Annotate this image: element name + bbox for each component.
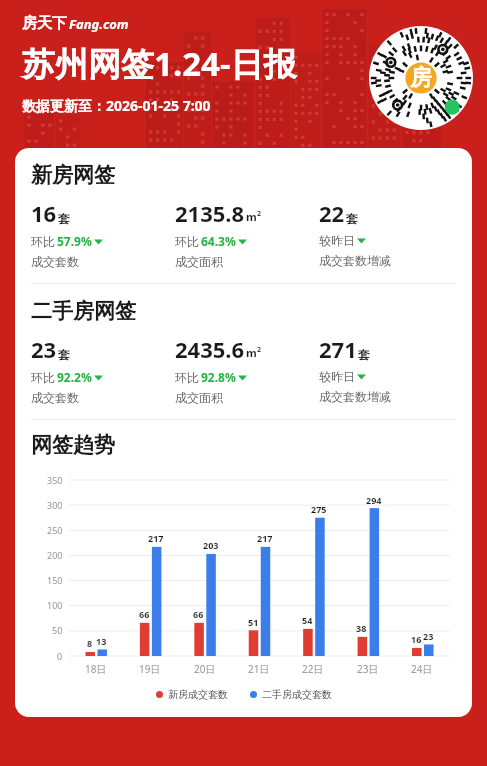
staticText: 苏州网签1.24-日报 bbox=[22, 41, 297, 86]
staticText: 24日 bbox=[411, 662, 433, 676]
staticText: 200 bbox=[47, 549, 63, 561]
staticText: 套 bbox=[358, 347, 370, 362]
staticText: 环比 bbox=[31, 370, 55, 385]
staticText: 23 bbox=[423, 630, 434, 642]
staticText: 21日 bbox=[248, 662, 270, 676]
staticText: 217 bbox=[257, 532, 273, 544]
button[interactable]: 二手房成交套数 bbox=[250, 688, 332, 701]
staticText: 环比 bbox=[31, 234, 55, 249]
staticText: 套 bbox=[58, 347, 70, 362]
button[interactable]: 23 bbox=[31, 334, 175, 405]
staticText: 92.2% bbox=[57, 369, 92, 385]
staticText: 275 bbox=[311, 503, 327, 515]
staticText: m bbox=[246, 209, 257, 224]
staticText: m bbox=[246, 345, 257, 360]
staticText: 2435.6 bbox=[175, 334, 245, 364]
staticText: 100 bbox=[47, 599, 63, 611]
staticText: 16 bbox=[31, 198, 57, 228]
staticText: 20日 bbox=[194, 662, 216, 676]
button[interactable]: 二手房网签 bbox=[31, 298, 136, 324]
staticText: 环比 bbox=[175, 370, 199, 385]
staticText: 套 bbox=[346, 211, 358, 226]
staticText: 2 bbox=[257, 345, 262, 355]
staticText: 19日 bbox=[139, 662, 161, 676]
staticText: 成交套数 bbox=[31, 390, 79, 405]
staticText: 0 bbox=[57, 650, 63, 662]
staticText: 350 bbox=[47, 474, 63, 486]
staticText: 250 bbox=[47, 524, 63, 536]
staticText: 二手房成交套数 bbox=[262, 688, 332, 701]
staticText: 300 bbox=[47, 499, 63, 511]
staticText: 较昨日 bbox=[319, 369, 355, 384]
staticText: 22日 bbox=[302, 662, 324, 676]
button[interactable]: 2435.6 bbox=[175, 334, 319, 405]
staticText: 92.8% bbox=[201, 369, 236, 385]
staticText: 8 bbox=[87, 637, 93, 649]
staticText: 2135.8 bbox=[175, 198, 245, 228]
staticText: 新房成交套数 bbox=[168, 688, 228, 701]
staticText: 150 bbox=[47, 574, 63, 586]
button[interactable]: 16 bbox=[31, 198, 175, 269]
button[interactable]: 2135.8 bbox=[175, 198, 319, 269]
staticText: 数据更新至：2026-01-25 7:00 bbox=[22, 96, 211, 115]
staticText: 成交套数增减 bbox=[319, 253, 391, 268]
staticText: 22 bbox=[319, 198, 345, 228]
staticText: 203 bbox=[203, 539, 219, 551]
staticText: 51 bbox=[248, 616, 259, 628]
staticText: 66 bbox=[193, 608, 204, 620]
staticText: 271 bbox=[319, 334, 357, 364]
staticText: 64.3% bbox=[201, 233, 236, 249]
staticText: 13 bbox=[96, 635, 107, 647]
button[interactable]: 小程序二维码 bbox=[369, 26, 473, 130]
staticText: Fang.com bbox=[69, 15, 129, 33]
button[interactable]: 网签趋势 bbox=[31, 432, 115, 458]
staticText: 成交套数 bbox=[31, 254, 79, 269]
staticText: 房天下 bbox=[22, 14, 67, 33]
staticText: 2 bbox=[257, 209, 262, 219]
staticText: 18日 bbox=[85, 662, 107, 676]
button[interactable]: 新房成交套数 bbox=[156, 688, 228, 701]
staticText: 环比 bbox=[175, 234, 199, 249]
staticText: 成交面积 bbox=[175, 390, 223, 405]
staticText: 57.9% bbox=[57, 233, 92, 249]
staticText: 套 bbox=[58, 211, 70, 226]
staticText: 217 bbox=[148, 532, 164, 544]
staticText: 38 bbox=[356, 622, 367, 634]
staticText: 66 bbox=[139, 608, 150, 620]
staticText: 23日 bbox=[357, 662, 379, 676]
staticText: 16 bbox=[411, 633, 422, 645]
staticText: 成交套数增减 bbox=[319, 389, 391, 404]
button[interactable]: 271 bbox=[319, 334, 456, 404]
staticText: 较昨日 bbox=[319, 233, 355, 248]
button[interactable]: 新房网签 bbox=[31, 162, 115, 188]
staticText: 房 bbox=[410, 64, 432, 92]
staticText: 294 bbox=[366, 494, 382, 506]
staticText: 23 bbox=[31, 334, 57, 364]
staticText: 成交面积 bbox=[175, 254, 223, 269]
staticText: 54 bbox=[302, 614, 313, 626]
staticText: 50 bbox=[52, 624, 63, 636]
button[interactable]: 22 bbox=[319, 198, 456, 268]
